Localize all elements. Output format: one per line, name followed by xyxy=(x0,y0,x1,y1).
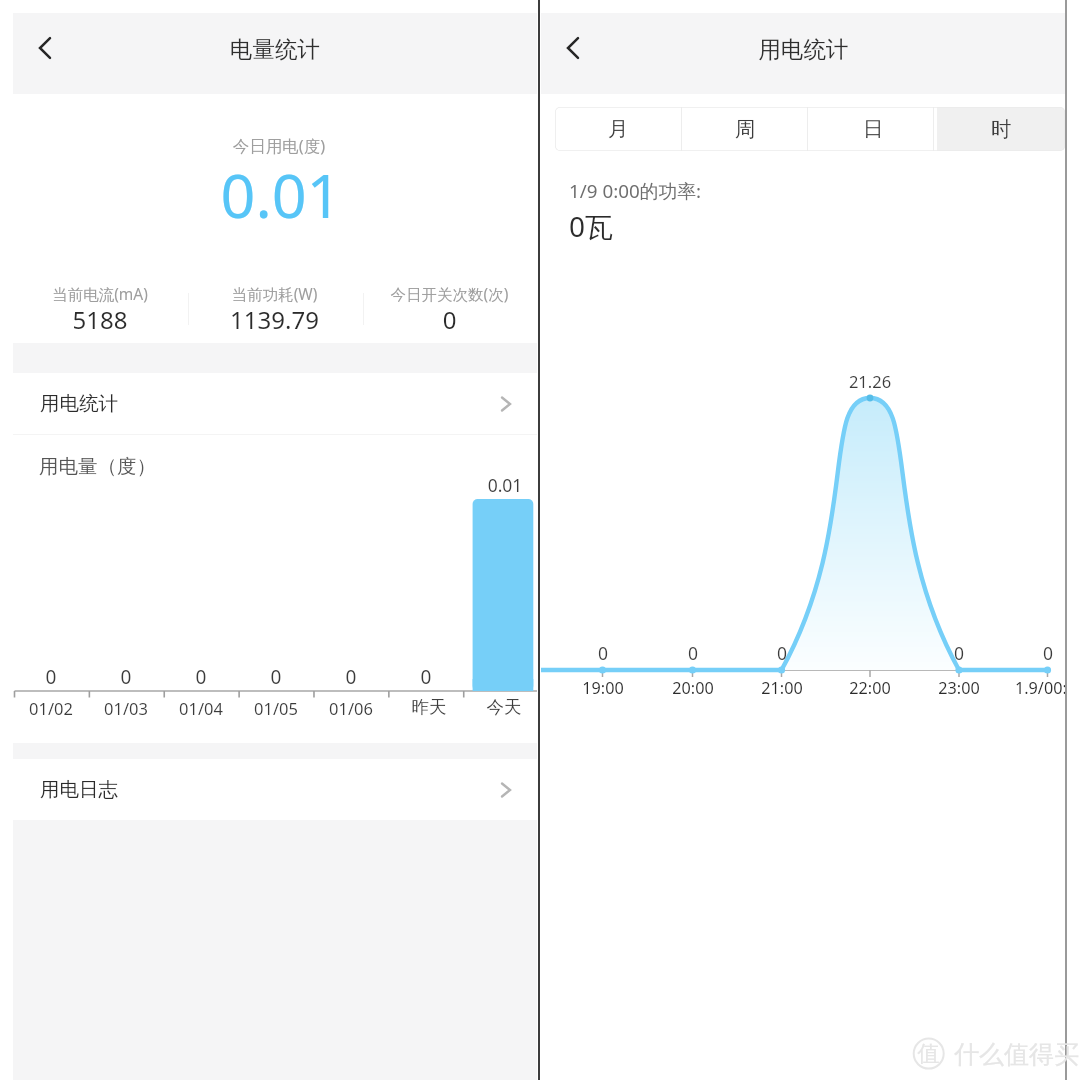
staticText: 值 xyxy=(913,1040,944,1068)
staticText: 0 xyxy=(171,664,231,690)
staticText: 0 xyxy=(362,303,537,336)
staticText: 0 xyxy=(96,664,156,690)
staticText: 0 xyxy=(1028,641,1066,665)
staticText: 用电量（度） xyxy=(39,454,156,479)
staticText: 20:00 xyxy=(643,677,743,699)
staticText: 0瓦 xyxy=(569,207,614,245)
staticText: 1/9 0:00的功率: xyxy=(569,178,702,204)
staticText: 周 xyxy=(735,116,756,142)
staticText: 23:00 xyxy=(909,677,1009,699)
staticText: 0 xyxy=(321,664,381,690)
staticText: 19:00 xyxy=(553,677,653,699)
staticText: 5188 xyxy=(13,303,187,336)
staticText: 1.9/00:00 xyxy=(1015,677,1066,699)
button[interactable]: Back xyxy=(25,30,65,66)
staticText: 0 xyxy=(762,641,802,665)
staticText: 用电日志 xyxy=(40,777,118,802)
staticText: 21.26 xyxy=(820,370,920,392)
staticText: 0 xyxy=(21,664,81,690)
staticText: 用电统计 xyxy=(541,35,1066,63)
staticText: 22:00 xyxy=(820,677,920,699)
staticText: 0.01 xyxy=(19,153,537,236)
button[interactable]: 时 xyxy=(937,107,1065,151)
staticText: 时 xyxy=(991,116,1012,142)
staticText: 01/06 xyxy=(311,697,391,719)
button[interactable]: 用电日志 xyxy=(13,759,537,820)
button[interactable]: 日 xyxy=(809,107,937,151)
button[interactable]: 月 xyxy=(555,107,682,151)
staticText: 01/03 xyxy=(86,697,166,719)
staticText: 电量统计 xyxy=(13,35,537,63)
button[interactable]: 用电统计 xyxy=(13,373,537,434)
staticText: 0.01 xyxy=(455,473,537,497)
staticText: 21:00 xyxy=(732,677,832,699)
staticText: 01/02 xyxy=(13,697,91,719)
staticText: 0 xyxy=(673,641,713,665)
staticText: 01/05 xyxy=(236,697,316,719)
staticText: 当前功耗(W) xyxy=(187,283,362,304)
staticText: 0 xyxy=(583,641,623,665)
staticText: 今天 xyxy=(464,696,537,718)
staticText: 月 xyxy=(608,116,629,142)
staticText: 01/04 xyxy=(161,697,241,719)
staticText: 用电统计 xyxy=(40,391,118,416)
staticText: 日 xyxy=(863,116,884,142)
staticText: 什么值得买 xyxy=(954,1039,1079,1070)
button[interactable]: 周 xyxy=(682,107,809,151)
staticText: 昨天 xyxy=(389,696,469,718)
staticText: 当前电流(mA) xyxy=(13,283,187,304)
staticText: 今日用电(度) xyxy=(17,134,537,157)
staticText: 0 xyxy=(396,664,456,690)
staticText: 1139.79 xyxy=(187,303,362,336)
staticText: 今日开关次数(次) xyxy=(362,283,537,304)
staticText: 0 xyxy=(246,664,306,690)
button[interactable]: Back xyxy=(553,30,593,66)
staticText: 0 xyxy=(939,641,979,665)
